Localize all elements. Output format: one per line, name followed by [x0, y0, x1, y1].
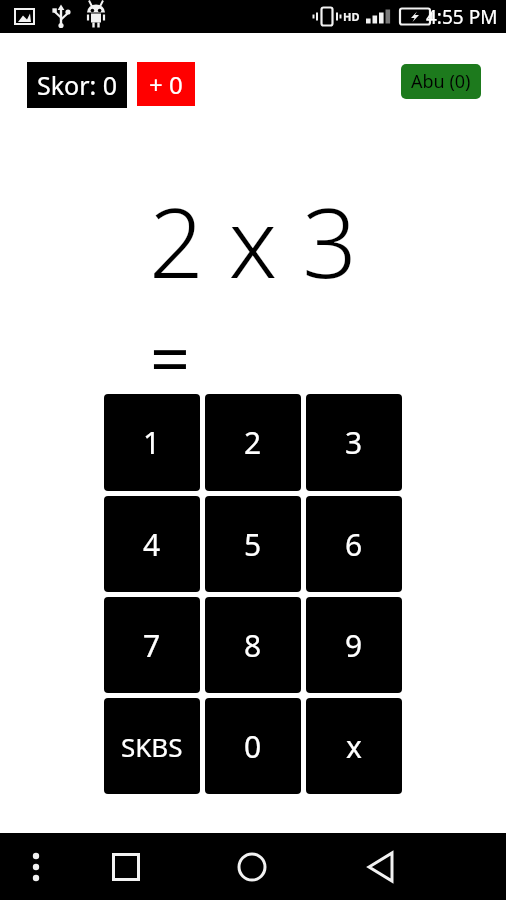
staticText: SKBS — [121, 729, 183, 764]
staticText: Abu (0) — [411, 69, 471, 94]
button[interactable]: 4 — [104, 496, 200, 592]
staticText: 9 — [345, 625, 363, 666]
staticText: 3 — [345, 422, 363, 463]
button[interactable]: + 0 — [137, 62, 195, 106]
staticText: + 0 — [149, 68, 183, 101]
staticText: 0 — [244, 726, 262, 767]
button[interactable]: Recent apps — [96, 837, 156, 897]
button[interactable]: Skor: 0 — [27, 62, 127, 108]
button[interactable]: Back — [352, 837, 412, 897]
button[interactable]: Home — [222, 837, 282, 897]
button[interactable]: 0 — [205, 698, 301, 794]
staticText: = — [150, 309, 191, 379]
staticText: 6 — [345, 524, 363, 565]
staticText: 1 — [143, 422, 161, 463]
staticText: HD — [343, 9, 360, 24]
staticText: Skor: 0 — [37, 68, 118, 102]
staticText: 2 — [244, 422, 262, 463]
staticText: x — [346, 726, 362, 767]
staticText: 5 — [244, 524, 262, 565]
button[interactable]: x — [306, 698, 402, 794]
button[interactable]: 3 — [306, 394, 402, 491]
button[interactable]: More options — [6, 837, 66, 897]
button[interactable]: 9 — [306, 597, 402, 693]
staticText: 8 — [244, 625, 262, 666]
staticText: 2 x 3 — [149, 175, 357, 306]
button[interactable]: 6 — [306, 496, 402, 592]
staticText: 4 — [143, 524, 161, 565]
button[interactable]: 1 — [104, 394, 200, 491]
staticText: 4:55 PM — [426, 4, 498, 30]
button[interactable]: Abu (0) — [401, 64, 481, 99]
button[interactable]: 2 — [205, 394, 301, 491]
button[interactable]: 8 — [205, 597, 301, 693]
staticText: 7 — [143, 625, 161, 666]
button[interactable]: 7 — [104, 597, 200, 693]
button[interactable]: 5 — [205, 496, 301, 592]
button[interactable]: SKBS — [104, 698, 200, 794]
